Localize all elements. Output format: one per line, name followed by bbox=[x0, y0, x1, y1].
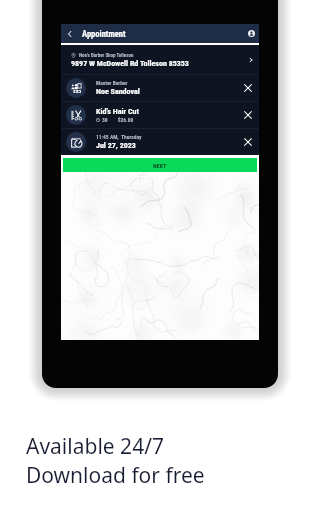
button[interactable]: Noe's Barber Shop Tolleson bbox=[61, 45, 259, 74]
staticText: 30 $26.00 bbox=[102, 117, 134, 123]
button[interactable]: Remove bbox=[240, 134, 256, 150]
staticText: NEXT bbox=[153, 162, 167, 169]
staticText: Kid's Hair Cut bbox=[96, 107, 139, 116]
button[interactable]: Account bbox=[244, 27, 258, 41]
button[interactable]: Remove bbox=[240, 80, 256, 96]
staticText: Noe Sandoval bbox=[96, 87, 140, 96]
staticText: Download for free bbox=[26, 461, 205, 490]
staticText: Available 24/7 bbox=[26, 432, 164, 461]
staticText: Jul 27, 2023 bbox=[96, 141, 136, 150]
button[interactable]: Master Barber bbox=[61, 75, 259, 101]
staticText: Noe's Barber Shop Tolleson bbox=[79, 52, 134, 58]
button[interactable]: Back bbox=[63, 27, 77, 41]
button[interactable]: Change location bbox=[244, 53, 258, 67]
staticText: 11:45 AM, Thursday bbox=[96, 134, 142, 140]
staticText: Appointment bbox=[82, 29, 126, 39]
staticText: 9897 W McDowell Rd Tolleson 85353 bbox=[71, 59, 189, 68]
button[interactable]: Remove bbox=[240, 107, 256, 123]
button[interactable]: NEXT bbox=[63, 158, 257, 172]
staticText: Master Barber bbox=[96, 80, 128, 86]
button[interactable]: Kid's Hair Cut bbox=[61, 102, 259, 128]
button[interactable]: 11:45 AM, Thursday bbox=[61, 129, 259, 155]
